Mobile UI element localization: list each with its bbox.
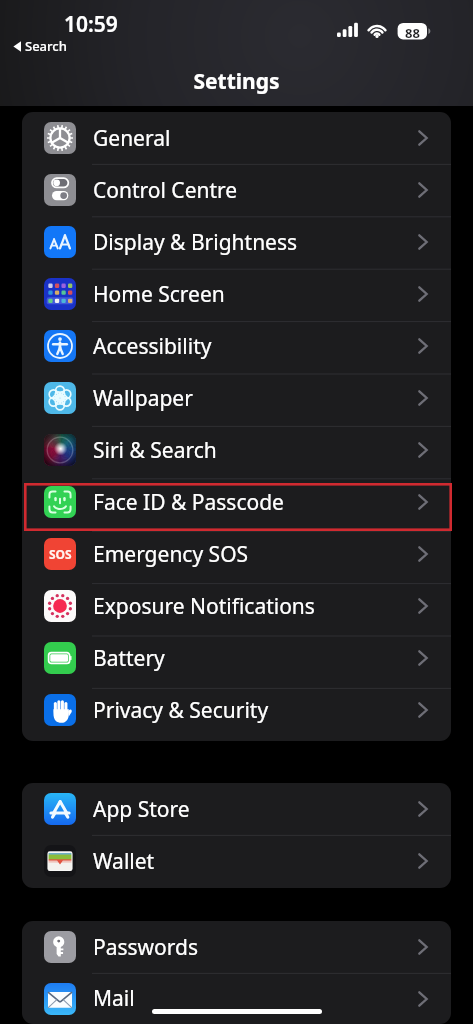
button[interactable]: Display & Brightness [22,216,451,268]
staticText: Exposure Notifications [93,592,315,621]
staticText: Display & Brightness [93,228,298,257]
staticText: Privacy & Security [93,696,269,725]
button[interactable]: Control Centre [22,164,451,216]
staticText: Face ID & Passcode [93,488,284,517]
staticText: Accessibility [93,332,212,361]
staticText: General [93,124,171,153]
staticText: 88 [398,24,427,42]
staticText: Wallpaper [93,384,193,413]
button[interactable]: General [22,112,451,164]
button[interactable]: Home Screen [22,268,451,320]
staticText: Search [25,37,67,55]
button[interactable]: Mail [22,973,451,1024]
button[interactable]: Exposure Notifications [22,580,451,632]
staticText: Wallet [93,847,155,876]
button[interactable]: Battery [22,632,451,684]
button[interactable]: Passwords [22,921,451,973]
staticText: 10:59 [64,10,118,39]
button[interactable]: Face ID & Passcode [22,476,451,528]
staticText: Passwords [93,933,199,962]
button[interactable]: Siri & Search [22,424,451,476]
button[interactable]: Wallpaper [22,372,451,424]
button[interactable]: Back to Search [13,37,67,55]
button[interactable]: App Store [22,783,451,835]
button[interactable]: Privacy & Security [22,684,451,736]
staticText: App Store [93,795,190,824]
staticText: Mail [93,984,135,1013]
button[interactable]: Accessibility [22,320,451,372]
button[interactable]: SOS [22,528,451,580]
staticText: Home Screen [93,280,225,309]
staticText: Siri & Search [93,436,217,465]
button[interactable]: Wallet [22,835,451,887]
staticText: Emergency SOS [93,540,249,569]
staticText: Settings [0,67,473,96]
staticText: Control Centre [93,176,238,205]
staticText: Battery [93,644,165,673]
staticText: SOS [49,546,72,562]
